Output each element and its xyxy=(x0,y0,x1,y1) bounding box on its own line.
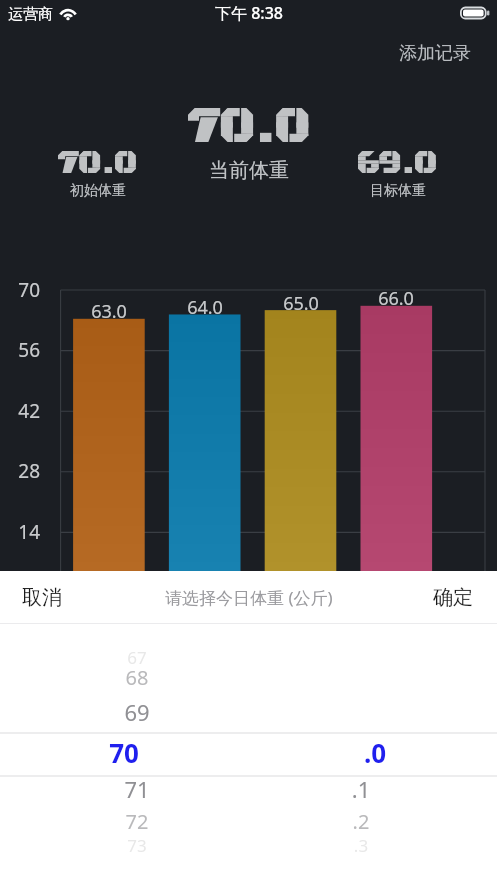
staticText: 70 xyxy=(64,735,184,769)
staticText: .0 xyxy=(315,735,435,769)
staticText: .1 xyxy=(301,774,421,804)
button[interactable]: 70 xyxy=(0,735,497,769)
staticText: 运营商 xyxy=(8,5,53,24)
button[interactable]: 添加记录 xyxy=(373,33,497,74)
staticText: 73 xyxy=(77,834,197,857)
staticText: 63.0 xyxy=(64,299,154,324)
staticText: 67 xyxy=(77,646,197,669)
staticText: 65.0 xyxy=(256,291,346,316)
button[interactable]: 取消 xyxy=(0,573,84,622)
button[interactable]: 确定 xyxy=(409,573,497,622)
staticText: 确定 xyxy=(433,585,473,610)
staticText: 56 xyxy=(0,337,40,363)
button[interactable]: 68 xyxy=(0,660,497,694)
staticText: 下午 8:38 xyxy=(215,2,283,24)
staticText: 取消 xyxy=(22,585,62,610)
staticText: .2 xyxy=(301,808,421,835)
staticText: 70 xyxy=(0,277,40,303)
staticText: 72 xyxy=(77,808,197,835)
button[interactable]: 72 xyxy=(0,804,497,838)
other: Wi-Fi xyxy=(58,8,78,22)
staticText: 初始体重 xyxy=(70,182,126,200)
staticText: 69 xyxy=(77,697,197,727)
staticText: 64.0 xyxy=(160,295,250,320)
other: Battery xyxy=(460,6,490,20)
staticText: 目标体重 xyxy=(370,182,426,200)
staticText: 28 xyxy=(0,458,40,484)
button[interactable]: 71 xyxy=(0,772,497,806)
staticText: 42 xyxy=(0,398,40,424)
staticText: 14 xyxy=(0,519,40,545)
staticText: 68 xyxy=(77,664,197,691)
staticText: 66.0 xyxy=(351,286,441,311)
staticText: 当前体重 xyxy=(209,158,289,183)
button[interactable]: 69 xyxy=(0,695,497,729)
staticText: 71 xyxy=(77,774,197,804)
staticText: 请选择今日体重 (公斤) xyxy=(165,586,333,609)
staticText: 添加记录 xyxy=(399,42,471,65)
